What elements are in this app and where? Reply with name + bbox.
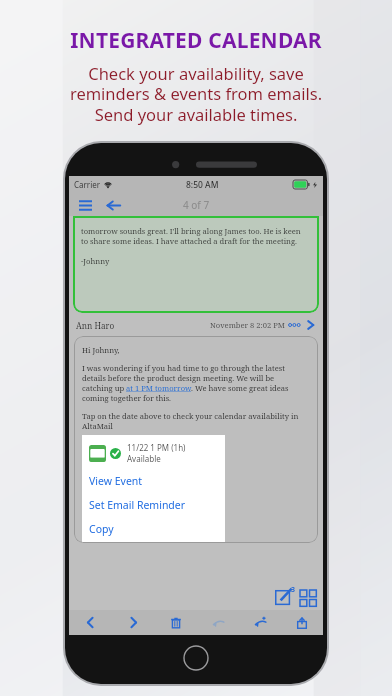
button[interactable]: Set Email Reminder	[89, 498, 220, 512]
staticText: Hi Johnny,	[82, 345, 120, 355]
staticText: Available	[127, 453, 161, 464]
staticText: 4 of 7	[183, 198, 210, 212]
button[interactable]: Menu	[76, 196, 94, 214]
button[interactable]: Back	[103, 195, 123, 215]
staticText: November 8 2:02 PM	[210, 320, 285, 330]
button[interactable]: Compose, 3 drafts	[274, 585, 296, 607]
staticText: 3	[291, 585, 296, 595]
button[interactable]: View Event	[89, 474, 220, 488]
staticText: Check your availability, save reminders …	[0, 62, 392, 126]
button[interactable]: Grid view	[300, 590, 317, 607]
staticText: 8:50 AM	[186, 179, 219, 191]
staticText: I was wondering if you had time to go th…	[82, 363, 289, 403]
button[interactable]: Next	[112, 610, 155, 635]
staticText: Set Email Reminder	[89, 498, 186, 512]
staticText: Carrier	[74, 179, 101, 190]
button[interactable]: Share	[281, 610, 323, 635]
staticText: Ann Haro	[76, 320, 115, 331]
staticText: Tap on the date above to check your cale…	[82, 411, 299, 431]
button[interactable]: Delete	[155, 610, 197, 635]
staticText: View Event	[89, 474, 143, 488]
button[interactable]: Copy	[89, 522, 220, 536]
button[interactable]: Forward	[239, 610, 281, 635]
staticText: 11/22 1 PM (1h)	[127, 442, 186, 453]
button[interactable]: Reply	[197, 610, 239, 635]
staticText: tomorrow sounds great. I'll bring along …	[81, 226, 301, 266]
staticText: INTEGRATED CALENDAR	[0, 26, 392, 55]
button[interactable]: Previous	[69, 610, 112, 635]
staticText: Copy	[89, 522, 114, 536]
button[interactable]: Ann Haro	[76, 319, 316, 331]
